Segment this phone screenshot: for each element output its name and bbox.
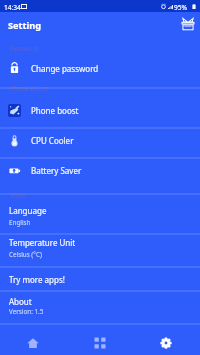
- staticText: Version: 1.5: [9, 307, 44, 316]
- button[interactable]: CPU Cooler: [0, 127, 200, 157]
- button[interactable]: Gifts: [178, 14, 198, 34]
- button[interactable]: About: [0, 290, 200, 323]
- staticText: Language: [9, 205, 47, 216]
- button[interactable]: Try more apps!: [0, 266, 200, 291]
- staticText: 14:34: [4, 3, 21, 12]
- button[interactable]: Change password: [0, 49, 200, 87]
- button[interactable]: Apps: [84, 322, 116, 355]
- button[interactable]: Home: [17, 322, 49, 355]
- button[interactable]: Settings: [150, 322, 182, 355]
- staticText: CPU Cooler: [31, 135, 74, 146]
- staticText: More: [10, 191, 26, 200]
- button[interactable]: Language: [0, 193, 200, 233]
- staticText: Phone Boost: [10, 84, 48, 93]
- button[interactable]: Phone boost: [0, 87, 200, 127]
- button[interactable]: Battery Saver: [0, 157, 200, 194]
- staticText: Try more apps!: [9, 274, 65, 285]
- staticText: Phone boost: [31, 105, 79, 116]
- staticText: 95%: [174, 3, 188, 12]
- staticText: About: [9, 296, 32, 307]
- staticText: Change password: [31, 63, 99, 74]
- button[interactable]: Temperature Unit: [0, 233, 200, 266]
- staticText: English: [9, 218, 31, 227]
- staticText: Battery Saver: [31, 165, 82, 176]
- staticText: Temperature Unit: [9, 237, 76, 248]
- staticText: Password: [10, 44, 39, 53]
- staticText: Celsius (°C): [9, 250, 42, 259]
- staticText: Setting: [8, 19, 42, 32]
